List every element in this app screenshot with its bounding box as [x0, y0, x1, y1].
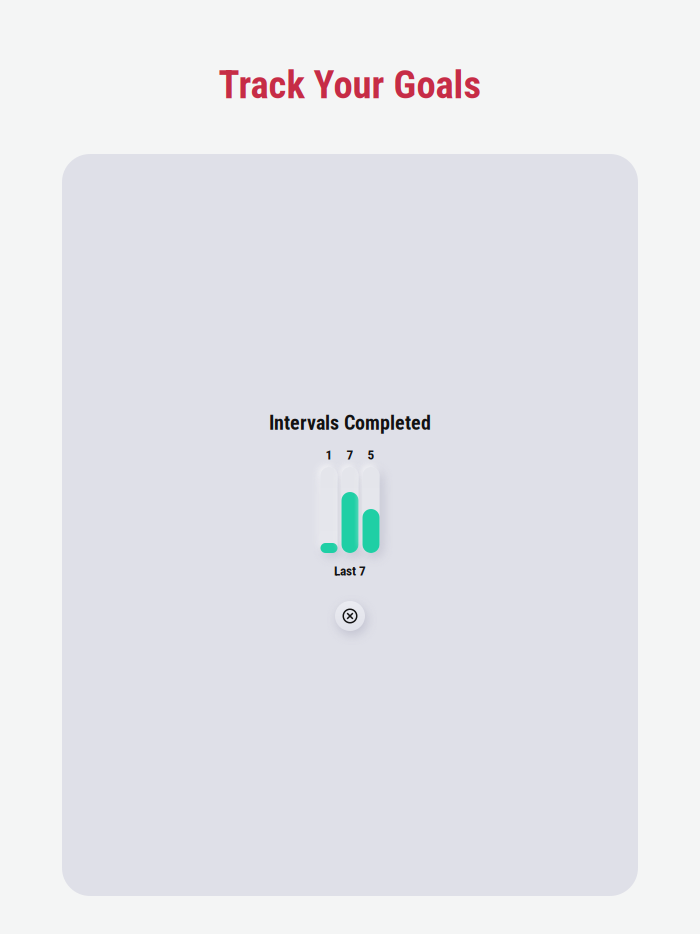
staticText: Intervals Completed — [269, 411, 431, 435]
staticText: 5 — [367, 447, 374, 463]
staticText: 1 — [325, 447, 332, 463]
staticText: 7 — [346, 447, 353, 463]
staticText: Track Your Goals — [218, 62, 481, 108]
button[interactable]: Dismiss — [335, 601, 365, 631]
staticText: Last 7 — [334, 563, 366, 579]
